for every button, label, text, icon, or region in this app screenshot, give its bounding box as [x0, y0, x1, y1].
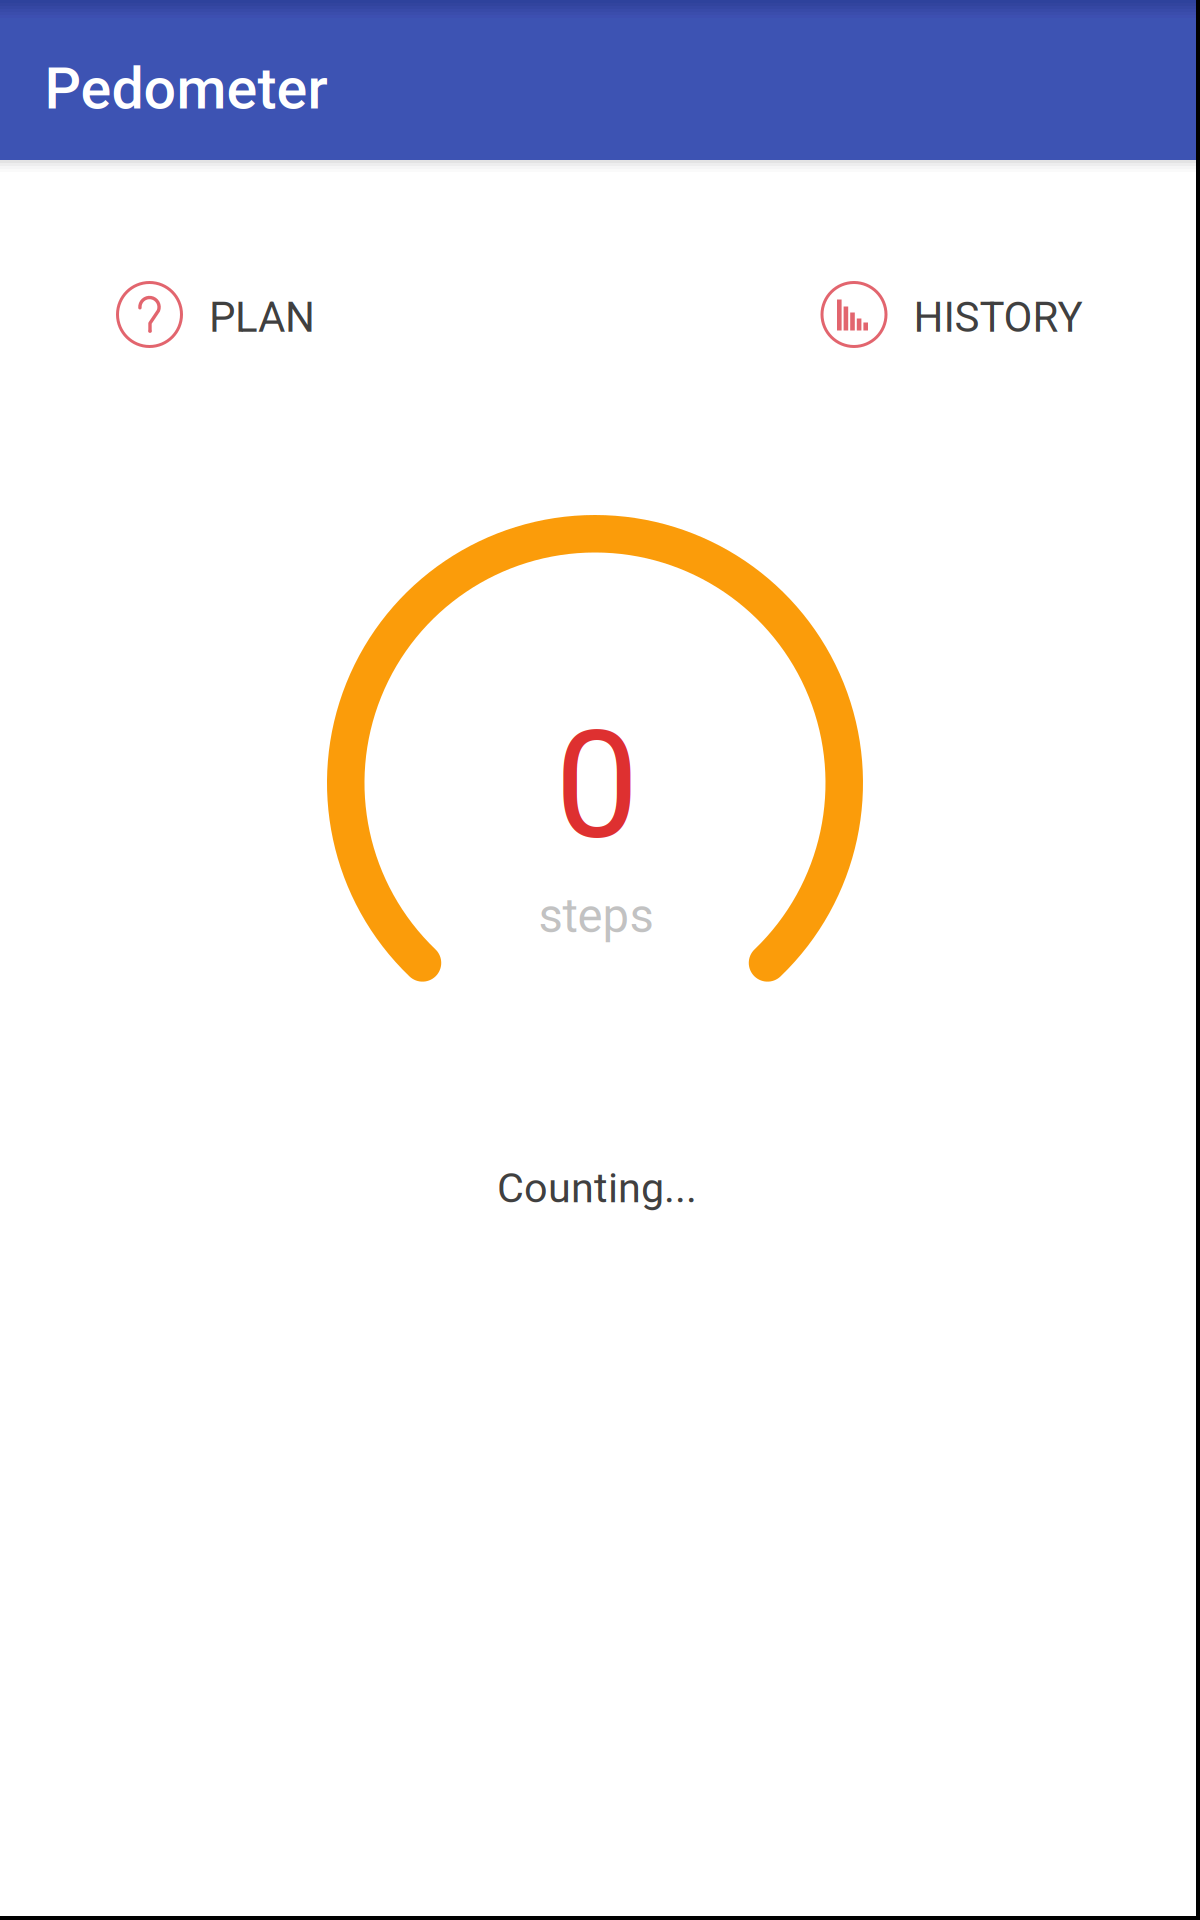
button[interactable]: HISTORY — [820, 281, 1082, 351]
staticText: HISTORY — [913, 293, 1082, 342]
button[interactable]: PLAN — [116, 281, 315, 351]
staticText: steps — [538, 888, 653, 944]
staticText: 0 — [555, 698, 639, 873]
staticText: Pedometer — [44, 55, 327, 123]
staticText: Counting... — [497, 1164, 697, 1212]
staticText: PLAN — [209, 293, 315, 342]
